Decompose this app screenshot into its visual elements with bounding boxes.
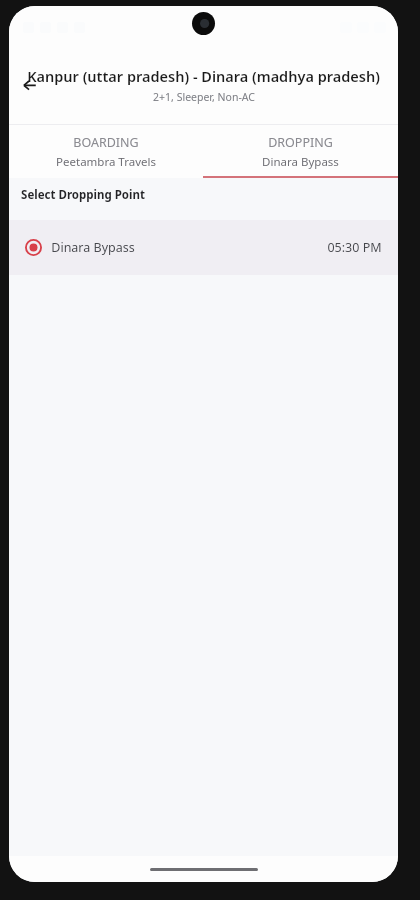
staticText: Select Dropping Point bbox=[21, 187, 145, 203]
staticText: Dinara Bypass bbox=[262, 154, 339, 170]
staticText: Kanpur (uttar pradesh) - Dinara (madhya … bbox=[27, 66, 380, 86]
button[interactable]: DROPPING bbox=[203, 125, 398, 178]
staticText: Dinara Bypass bbox=[51, 239, 135, 256]
button[interactable]: BOARDING bbox=[9, 125, 203, 178]
staticText: 2+1, Sleeper, Non-AC bbox=[153, 90, 255, 104]
staticText: DROPPING bbox=[268, 134, 333, 151]
button[interactable]: Dinara Bypass bbox=[9, 220, 398, 275]
staticText: Peetambra Travels bbox=[56, 154, 156, 170]
staticText: BOARDING bbox=[73, 134, 139, 151]
staticText: 05:30 PM bbox=[327, 239, 382, 256]
button[interactable]: Back bbox=[15, 70, 45, 100]
